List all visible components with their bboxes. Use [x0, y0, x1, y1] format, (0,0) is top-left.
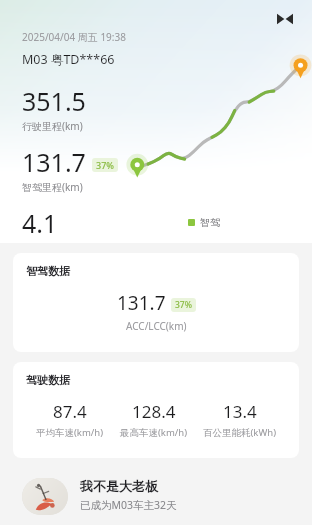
staticText: 37% [175, 299, 192, 311]
staticText: 百公里能耗(kWh) [203, 426, 276, 439]
button[interactable]: 我不是大老板 [0, 470, 312, 525]
staticText: 驾驶数据 [26, 373, 70, 387]
staticText: 131.7 [117, 290, 166, 316]
staticText: 我不是大老板 [80, 478, 158, 494]
staticText: 最高车速(km/h) [120, 426, 188, 439]
staticText: M03 粤TD***66 [22, 51, 115, 68]
staticText: 128.4 [132, 400, 176, 423]
staticText: 351.5 [22, 84, 86, 118]
staticText: 已成为M03车主32天 [80, 498, 177, 512]
staticText: 4.1 [22, 206, 58, 240]
staticText: 37% [96, 159, 114, 171]
staticText: 智驾里程(km) [22, 180, 83, 194]
staticText: 智驾 [200, 216, 220, 229]
button[interactable]: Collapse [272, 6, 298, 32]
staticText: 行驶里程(km) [22, 119, 83, 133]
staticText: 智驾数据 [26, 264, 70, 278]
button[interactable]: 智驾数据 [13, 253, 299, 352]
staticText: 2025/04/04 周五 19:38 [22, 30, 126, 44]
staticText: 13.4 [223, 400, 257, 423]
staticText: ACC/LCC(km) [126, 319, 187, 333]
staticText: 87.4 [53, 400, 87, 423]
staticText: 平均车速(km/h) [36, 426, 104, 439]
staticText: 131.7 [22, 145, 86, 179]
button[interactable]: 驾驶数据 [13, 362, 299, 458]
